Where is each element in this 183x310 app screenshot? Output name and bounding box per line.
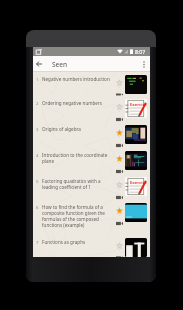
button[interactable]: 2 — [33, 96, 150, 122]
button[interactable]: Back — [33, 56, 45, 72]
button[interactable]: 5 — [33, 174, 150, 200]
staticText: Introduction to the coordinate plane — [42, 152, 111, 164]
staticText: 4 — [36, 152, 42, 158]
button[interactable]: 7 — [33, 235, 150, 257]
button[interactable]: 6 — [33, 200, 150, 235]
staticText: 7 — [36, 239, 42, 245]
staticText: Seen — [52, 60, 68, 69]
staticText: Factoring quadratics with a leading coef… — [42, 178, 111, 190]
staticText: Exercise — [130, 102, 147, 108]
button[interactable]: More options — [138, 56, 150, 72]
staticText: 8:07 — [135, 48, 146, 55]
staticText: Origins of algebra — [42, 126, 111, 132]
staticText: Exercise — [130, 180, 147, 186]
staticText: How to find the formula of a composite f… — [42, 204, 111, 228]
staticText: 2 — [36, 100, 42, 106]
staticText: 6 — [36, 204, 42, 210]
staticText: Ordering negative numbers — [42, 100, 111, 106]
button[interactable]: 3 — [33, 122, 150, 148]
button[interactable]: 4 — [33, 148, 150, 174]
staticText: 3 — [36, 126, 42, 132]
button[interactable]: 1 — [33, 72, 150, 96]
staticText: 1 — [36, 76, 42, 82]
staticText: Negative numbers introduction — [42, 76, 111, 82]
staticText: 5 — [36, 178, 42, 184]
staticText: Functions as graphs — [42, 239, 111, 245]
